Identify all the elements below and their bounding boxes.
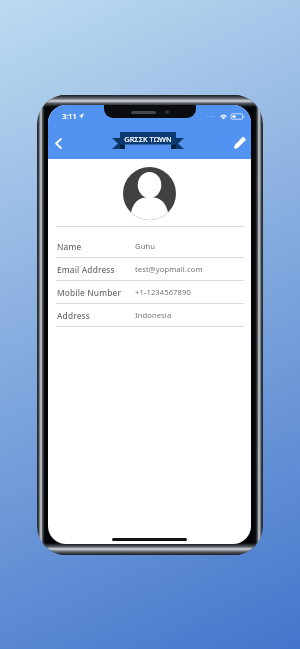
button[interactable]: Mobile Number <box>48 281 251 304</box>
staticText: test@yopmail.com <box>135 264 203 274</box>
button[interactable]: Edit <box>229 130 251 156</box>
staticText: Address <box>57 310 135 321</box>
button[interactable]: Email Address <box>48 258 251 281</box>
button[interactable]: Address <box>48 304 251 327</box>
button[interactable]: Name <box>48 235 251 258</box>
staticText: Indonesia <box>135 310 172 320</box>
staticText: 3:11 <box>62 111 77 121</box>
staticText: GRΣΣK TΩWN <box>124 134 172 144</box>
button[interactable]: Back <box>48 130 68 156</box>
staticText: Mobile Number <box>57 287 135 298</box>
staticText: Guhu <box>135 241 156 251</box>
staticText: Email Address <box>57 264 135 275</box>
staticText: +1-1234567890 <box>135 287 191 297</box>
staticText: Name <box>57 241 135 252</box>
